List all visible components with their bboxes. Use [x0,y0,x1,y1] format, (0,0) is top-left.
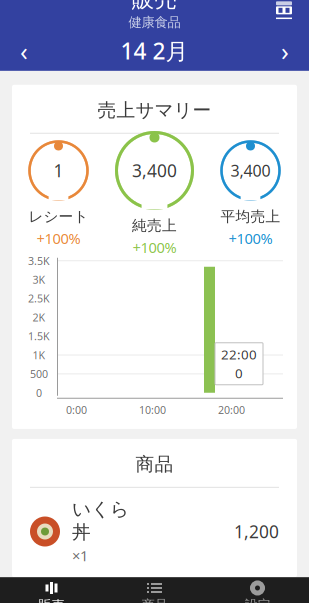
staticText: いくら丼 [72,498,129,544]
staticText: 1.5K [28,329,50,343]
staticText: 純売上 [132,216,177,234]
staticText: 売上サマリー [97,99,211,122]
button[interactable]: いくら丼 [12,488,297,577]
staticText: レシート [28,207,88,225]
staticText: 10:00 [139,403,166,417]
staticText: 0:00 [66,403,87,417]
button[interactable]: 店舗 [267,0,301,25]
staticText: 3.5K [28,254,50,268]
staticText: +100% [132,237,176,257]
button[interactable]: 次の日 [261,31,309,71]
staticText: 14 2月 [120,36,188,66]
button[interactable]: 設定 [206,575,309,603]
staticText: 3,400 [230,160,270,181]
staticText: 1,200 [234,520,279,543]
staticText: 20:00 [218,403,245,417]
staticText: 0 [235,364,243,382]
staticText: 販売 [38,597,64,603]
staticText: +100% [36,228,80,248]
staticText: 0 [36,386,42,400]
button[interactable]: 販売 [0,575,103,603]
staticText: 2K [32,310,45,324]
staticText: 平均売上 [220,207,280,225]
staticText: 1K [32,348,45,362]
staticText: 500 [30,367,48,381]
staticText: ‹ [20,34,28,68]
staticText: 3K [32,272,45,287]
staticText: 1 [53,159,63,182]
staticText: +100% [228,228,272,248]
staticText: 3,400 [132,159,177,182]
staticText: 健康食品 [128,14,180,30]
button[interactable]: 前の日 [0,31,48,71]
staticText: 2.5K [28,291,50,306]
staticText: 販売 [131,0,177,13]
button[interactable]: 商品 [103,575,206,603]
staticText: 22:00 [221,345,257,363]
staticText: 商品 [141,597,167,603]
staticText: 設定 [244,597,270,603]
staticText: › [281,34,289,68]
staticText: 商品 [135,453,173,476]
staticText: ×1 [72,546,88,565]
